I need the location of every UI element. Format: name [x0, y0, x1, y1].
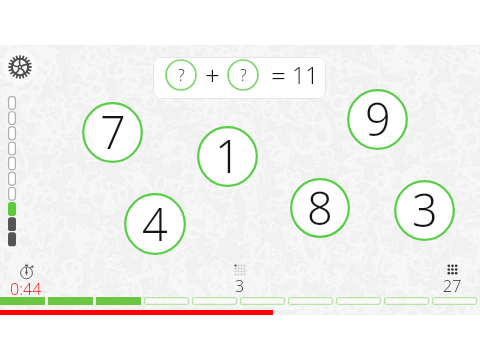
button[interactable]: 0:44 [10, 263, 42, 301]
staticText: 7 [100, 101, 126, 162]
button[interactable]: ? [153, 57, 326, 99]
staticText: 8 [307, 177, 333, 237]
button[interactable]: Settings [3, 50, 37, 84]
staticText: + [205, 57, 220, 92]
button[interactable]: 3 [222, 261, 258, 293]
button[interactable]: 1 [197, 126, 258, 187]
button[interactable]: 7 [82, 102, 143, 163]
staticText: 9 [365, 88, 391, 149]
button[interactable]: 9 [347, 89, 408, 150]
staticText: 0:44 [10, 278, 42, 300]
button[interactable]: 27 [434, 261, 470, 293]
button[interactable]: 8 [290, 178, 350, 238]
staticText: 4 [142, 193, 168, 254]
button[interactable]: Level progress [8, 96, 16, 248]
staticText: 3 [235, 275, 245, 297]
staticText: 1 [215, 125, 241, 186]
staticText: 11 [292, 59, 319, 90]
staticText: = [271, 57, 286, 92]
staticText: ? [240, 64, 247, 86]
staticText: 3 [412, 179, 438, 240]
staticText: ? [178, 64, 185, 86]
button[interactable]: 3 [394, 180, 455, 241]
button[interactable]: 4 [124, 193, 186, 255]
staticText: 27 [443, 275, 462, 297]
